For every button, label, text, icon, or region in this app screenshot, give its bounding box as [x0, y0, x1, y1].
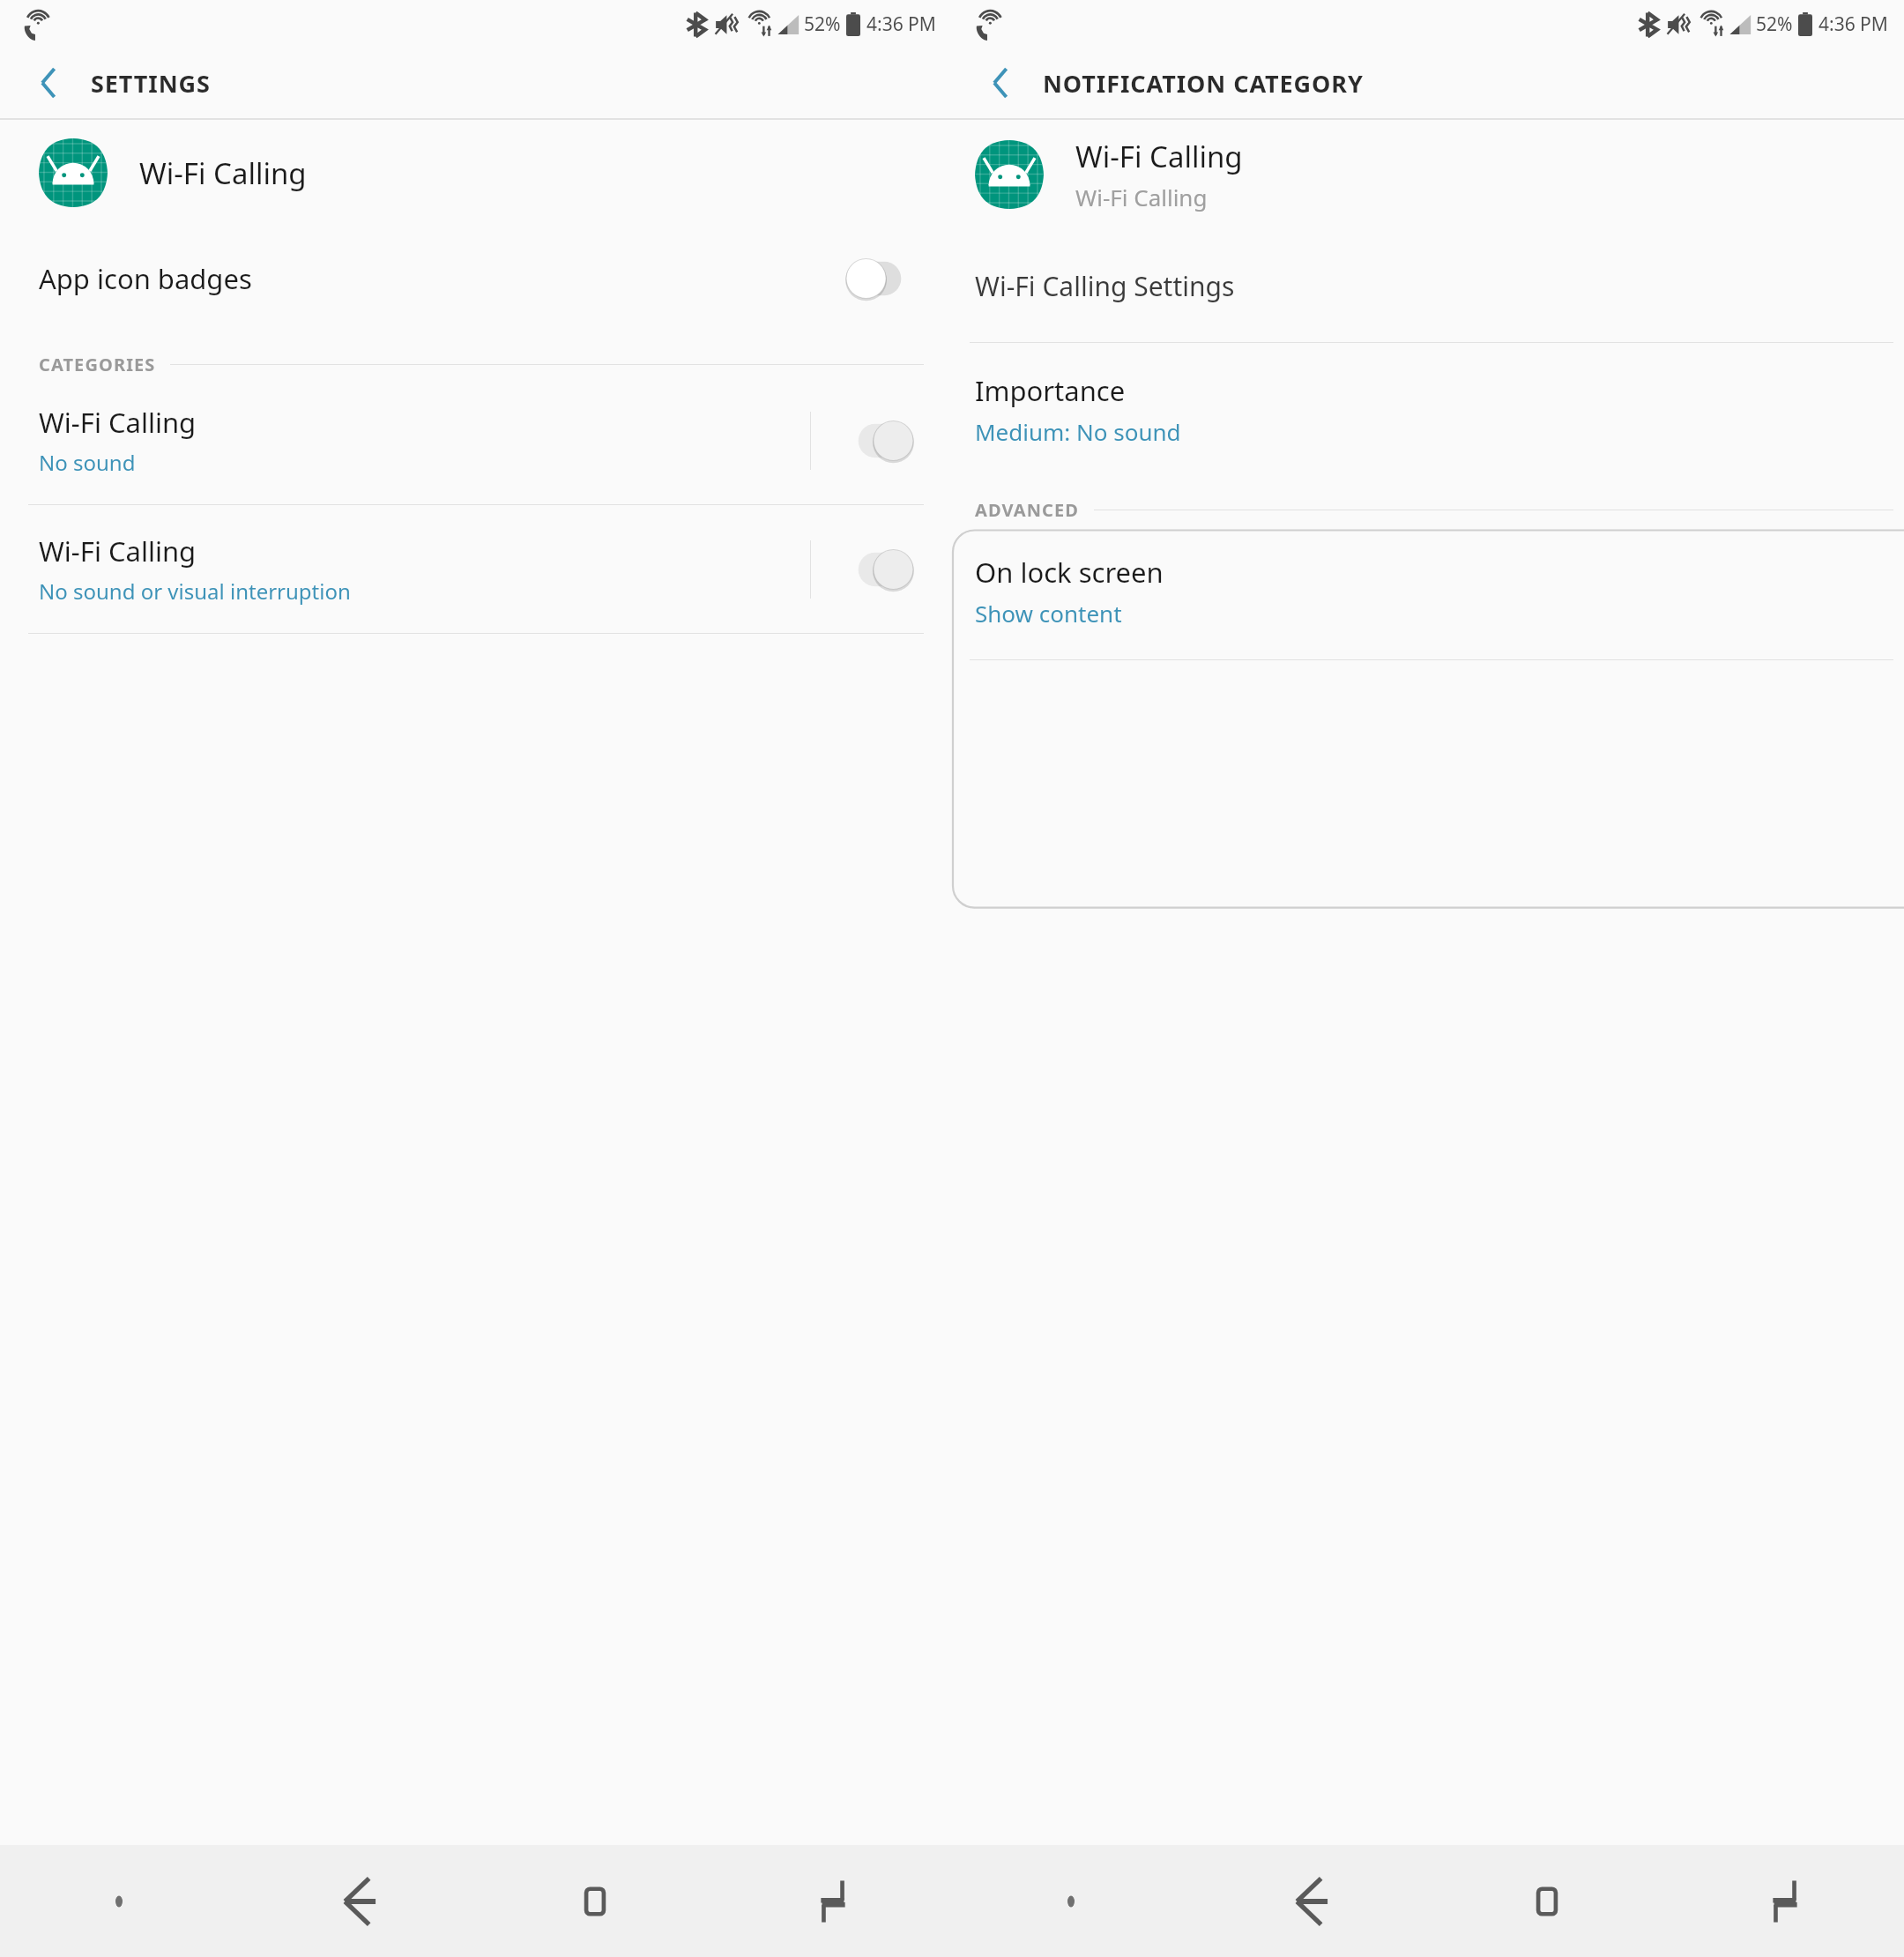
- staticText: ADVANCED: [975, 498, 1080, 522]
- button[interactable]: Back: [30, 63, 69, 102]
- staticText: No sound: [39, 448, 136, 477]
- button[interactable]: Toggle off: [846, 257, 913, 300]
- button[interactable]: Recents: [1666, 1845, 1904, 1957]
- staticText: Importance: [975, 372, 1126, 409]
- button[interactable]: Wi-Fi Calling: [952, 120, 1904, 229]
- button[interactable]: Wi-Fi Calling: [0, 120, 952, 226]
- button[interactable]: Back: [1190, 1845, 1428, 1957]
- button[interactable]: Home: [1428, 1845, 1666, 1957]
- staticText: SETTINGS: [91, 67, 211, 100]
- button[interactable]: Importance: [952, 343, 1904, 475]
- staticText: Wi-Fi Calling: [39, 404, 197, 441]
- staticText: 52%: [1756, 11, 1793, 37]
- button[interactable]: Recents: [714, 1845, 952, 1957]
- staticText: NOTIFICATION CATEGORY: [1043, 67, 1364, 100]
- staticText: Wi-Fi Calling: [139, 153, 307, 193]
- staticText: On lock screen: [975, 554, 1164, 591]
- staticText: Show content: [975, 598, 1122, 629]
- button[interactable]: App icon badges: [0, 226, 952, 331]
- button[interactable]: Toggle on: [846, 420, 913, 462]
- staticText: Wi-Fi Calling: [39, 532, 197, 569]
- button[interactable]: Back: [982, 63, 1021, 102]
- button[interactable]: Show keyboard: [952, 1845, 1190, 1957]
- button[interactable]: Show keyboard: [0, 1845, 238, 1957]
- button[interactable]: Wi-Fi Calling: [0, 376, 952, 504]
- button[interactable]: Back: [238, 1845, 476, 1957]
- button[interactable]: On lock screen: [952, 522, 1904, 659]
- staticText: Wi-Fi Calling: [1075, 182, 1208, 212]
- staticText: 52%: [804, 11, 841, 37]
- staticText: 4:36 PM: [866, 11, 936, 37]
- staticText: Wi-Fi Calling: [1075, 137, 1243, 176]
- staticText: No sound or visual interruption: [39, 577, 351, 606]
- staticText: CATEGORIES: [39, 353, 156, 376]
- button[interactable]: Home: [476, 1845, 714, 1957]
- staticText: App icon badges: [39, 260, 846, 297]
- button[interactable]: Wi-Fi Calling: [0, 505, 952, 633]
- button[interactable]: Wi-Fi Calling Settings: [952, 229, 1904, 342]
- staticText: Medium: No sound: [975, 416, 1181, 447]
- staticText: 4:36 PM: [1818, 11, 1888, 37]
- staticText: Wi-Fi Calling Settings: [975, 268, 1235, 304]
- button[interactable]: Toggle on: [846, 548, 913, 591]
